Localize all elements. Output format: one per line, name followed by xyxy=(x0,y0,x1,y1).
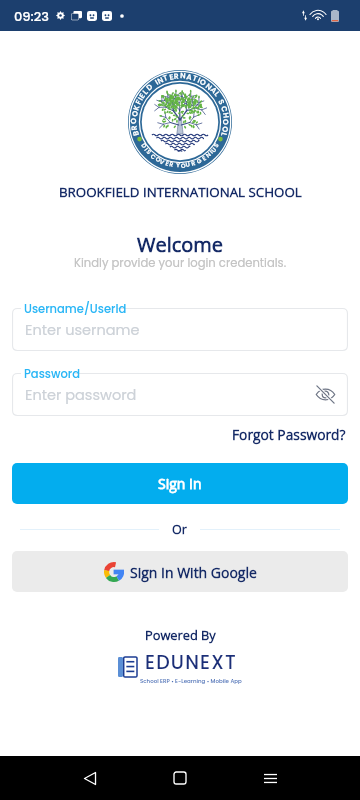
staticText: BROOKFIELD INTERNATIONAL SCHOOL xyxy=(59,183,302,201)
staticText: Powered By xyxy=(145,626,216,643)
button[interactable]: Recent apps xyxy=(249,757,291,799)
staticText: Username/UserId xyxy=(24,301,127,317)
staticText: Sign In With Google xyxy=(130,563,257,582)
staticText: Enter username xyxy=(25,320,140,340)
staticText: Sign In xyxy=(158,474,202,493)
other: Show password xyxy=(315,384,336,405)
staticText: Welcome xyxy=(137,231,224,258)
staticText: Or xyxy=(172,521,187,538)
button[interactable]: Home xyxy=(159,757,201,799)
staticText: Forgot Password? xyxy=(232,425,346,444)
staticText: Password xyxy=(24,366,80,382)
button[interactable]: Forgot Password? xyxy=(232,425,346,444)
button[interactable] xyxy=(12,308,348,351)
button[interactable]: Sign In xyxy=(12,463,348,504)
button[interactable] xyxy=(12,373,348,416)
button[interactable]: Sign In With Google xyxy=(12,551,348,592)
staticText: 09:23 xyxy=(14,7,49,25)
button[interactable]: Back xyxy=(69,757,111,799)
staticText: EDUNEXT xyxy=(145,649,237,676)
staticText: Kindly provide your login credentials. xyxy=(74,255,287,271)
staticText: School ERP • E-Learning • Mobile App xyxy=(140,677,242,685)
staticText: Enter password xyxy=(25,385,137,405)
